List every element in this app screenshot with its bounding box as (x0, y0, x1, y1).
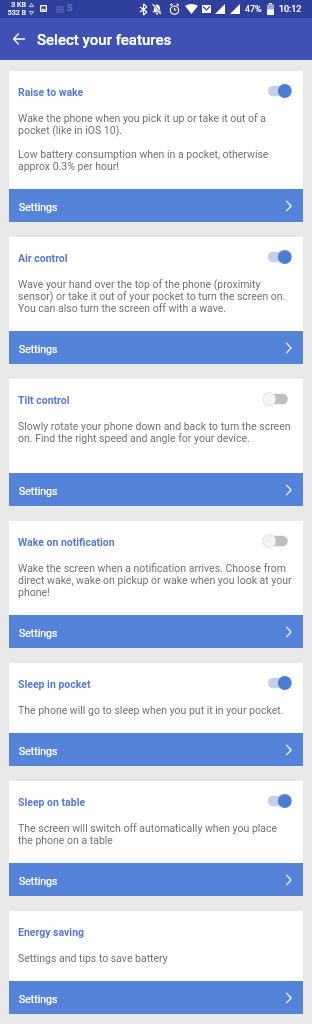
staticText: Select your features (37, 31, 172, 49)
staticText: Settings (19, 875, 58, 887)
staticText: S (67, 3, 73, 14)
staticText: Settings (19, 201, 58, 213)
staticText: Wave your hand over the top of the phone… (18, 278, 293, 314)
staticText: The phone will go to sleep when you put … (18, 704, 284, 716)
staticText: 47% (245, 4, 262, 15)
staticText: Tilt control (18, 394, 70, 406)
button[interactable]: Toggle on (258, 790, 294, 812)
staticText: Settings (19, 745, 58, 757)
staticText: Settings (19, 627, 58, 639)
button[interactable]: Settings (9, 733, 303, 766)
staticText: Sleep on table (18, 796, 86, 808)
button[interactable]: Toggle on (258, 672, 294, 694)
staticText: Settings (19, 993, 58, 1005)
staticText: Settings (19, 343, 58, 355)
staticText: Raise to wake (18, 86, 84, 98)
button[interactable]: Toggle on (258, 80, 294, 102)
staticText: 3 KB (7, 0, 26, 8)
staticText: Wake the phone when you pick it up or ta… (18, 112, 293, 172)
staticText: 10:12 (279, 4, 302, 15)
staticText: Settings (19, 485, 58, 497)
staticText: Wake on notification (18, 536, 115, 548)
staticText: Sleep in pocket (18, 678, 91, 690)
staticText: Wake the screen when a notification arri… (18, 562, 293, 598)
button[interactable]: Toggle off (258, 388, 294, 410)
button[interactable]: Settings (9, 615, 303, 648)
button[interactable]: Settings (9, 863, 303, 896)
button[interactable]: Toggle on (258, 246, 294, 268)
button[interactable]: Toggle off (258, 530, 294, 552)
button[interactable]: Back (3, 23, 35, 55)
button[interactable]: Settings (9, 331, 303, 364)
staticText: The screen will switch off automatically… (18, 822, 293, 846)
staticText: Air control (18, 252, 68, 264)
staticText: Settings and tips to save battery (18, 952, 168, 964)
button[interactable]: Settings (9, 981, 303, 1014)
staticText: Energy saving (18, 926, 85, 938)
button[interactable]: Settings (9, 189, 303, 222)
staticText: 532 B (7, 8, 26, 16)
staticText: Slowly rotate your phone down and back t… (18, 420, 293, 456)
button[interactable]: Settings (9, 473, 303, 506)
